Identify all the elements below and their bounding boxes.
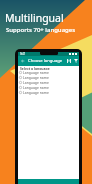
- button[interactable]: Language name: [18, 85, 79, 90]
- staticText: Select a language: [20, 66, 50, 70]
- staticText: 9:41: [20, 52, 26, 56]
- button[interactable]: Language name: [18, 90, 79, 95]
- button[interactable]: Language name: [18, 70, 79, 75]
- staticText: Language name: [23, 90, 49, 95]
- button[interactable]: Language name: [18, 75, 79, 80]
- button[interactable]: Filter: [74, 59, 78, 63]
- staticText: Language name: [23, 85, 49, 90]
- staticText: Language name: [23, 80, 49, 85]
- button[interactable]: Save: [67, 59, 71, 63]
- staticText: Multilingual: [5, 11, 64, 25]
- staticText: Language name: [23, 75, 49, 80]
- button[interactable]: Back: [21, 59, 25, 63]
- staticText: Choose language: [28, 58, 63, 64]
- button[interactable]: Language name: [18, 80, 79, 85]
- staticText: Supports 70+ languages: [6, 26, 76, 34]
- staticText: Language name: [23, 70, 49, 75]
